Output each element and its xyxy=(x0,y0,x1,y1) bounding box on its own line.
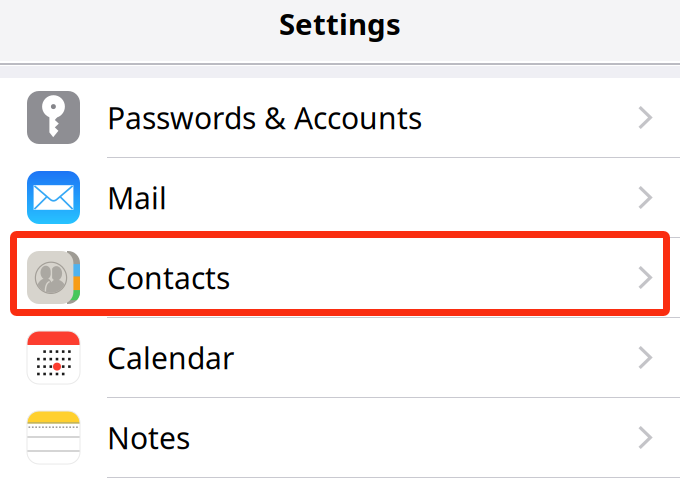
button[interactable]: Calendar xyxy=(0,318,680,397)
staticText: Passwords & Accounts xyxy=(107,97,422,138)
staticText: Settings xyxy=(279,3,401,43)
staticText: Contacts xyxy=(107,257,230,298)
staticText: Mail xyxy=(107,177,167,218)
staticText: Notes xyxy=(107,417,190,458)
button[interactable]: Notes xyxy=(0,398,680,477)
button[interactable]: Mail xyxy=(0,158,680,237)
staticText: Calendar xyxy=(107,337,234,378)
button[interactable]: Contacts xyxy=(0,238,680,317)
button[interactable]: Passwords & Accounts xyxy=(0,78,680,157)
